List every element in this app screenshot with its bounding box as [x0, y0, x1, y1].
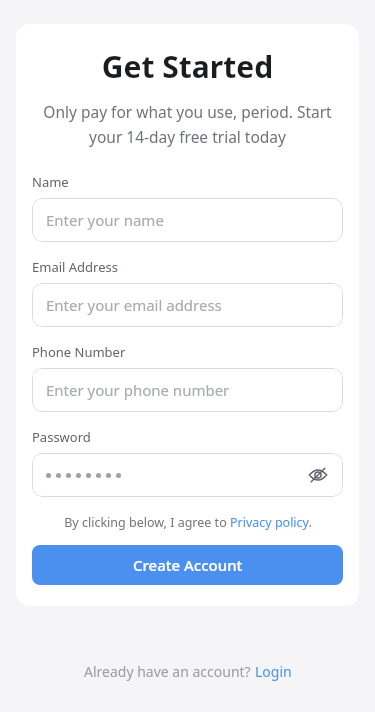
- staticText: Password: [32, 428, 91, 446]
- button[interactable]: Show password: [32, 453, 343, 497]
- staticText: By clicking below, I agree to Privacy po…: [64, 514, 312, 531]
- button[interactable]: Create Account: [32, 545, 343, 585]
- button[interactable]: Enter your phone number: [32, 368, 343, 412]
- staticText: Login: [255, 662, 292, 681]
- staticText: Already have an account?: [84, 662, 255, 681]
- staticText: Enter your name: [46, 210, 164, 230]
- staticText: Phone Number: [32, 343, 126, 361]
- staticText: Name: [32, 173, 69, 191]
- button[interactable]: Login: [255, 662, 292, 681]
- staticText: Get Started: [32, 46, 343, 87]
- staticText: Email Address: [32, 258, 118, 276]
- button[interactable]: Enter your name: [32, 198, 343, 242]
- button[interactable]: Enter your email address: [32, 283, 343, 327]
- staticText: Only pay for what you use, period. Start…: [36, 101, 339, 147]
- button[interactable]: Show password: [305, 462, 331, 488]
- staticText: Enter your phone number: [46, 380, 230, 400]
- staticText: Create Account: [133, 555, 243, 575]
- staticText: Enter your email address: [46, 295, 222, 315]
